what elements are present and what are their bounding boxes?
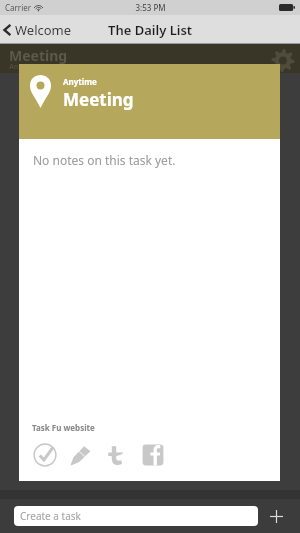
button[interactable]: Share on Facebook (140, 442, 166, 468)
button[interactable]: Create a task (14, 506, 258, 526)
staticText: 3:53 PM (135, 2, 166, 13)
staticText: No notes on this task yet. (33, 152, 176, 168)
button[interactable]: Share on Twitter (104, 442, 130, 468)
staticText: Anytime (63, 76, 97, 87)
staticText: Task Fu website (32, 422, 95, 433)
staticText: Welcome (15, 21, 72, 39)
staticText: The Daily List (108, 21, 193, 39)
staticText: Meeting (9, 46, 68, 65)
button[interactable]: Welcome (3, 21, 72, 39)
staticText: Create a task (20, 509, 81, 523)
button[interactable]: Edit task (68, 442, 94, 468)
staticText: Anytime (9, 62, 39, 72)
staticText: Carrier (5, 2, 32, 13)
button[interactable]: Complete task (32, 442, 58, 468)
button[interactable]: Add task (266, 506, 286, 526)
staticText: Meeting (63, 88, 134, 111)
button[interactable]: Settings (270, 48, 296, 73)
